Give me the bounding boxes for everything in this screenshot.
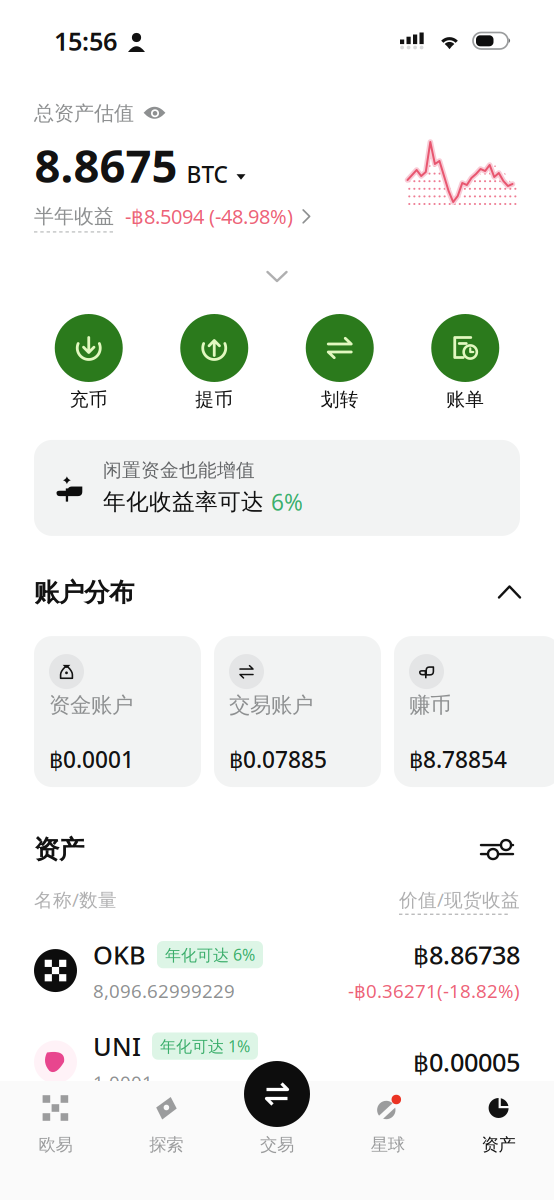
button[interactable]: 欧易 [0,1081,111,1200]
staticText: 欧易 [38,1134,72,1155]
staticText: 探索 [149,1134,183,1155]
staticText: 年化可达 6% [165,944,255,965]
staticText: -฿0.36271(-18.82%) [348,978,520,1003]
staticText: 年化可达 1% [160,1035,250,1057]
staticText: 1.0001 [93,1070,153,1095]
button[interactable]: 赚币 [394,636,554,787]
button[interactable]: 星球 [332,1081,443,1200]
button[interactable]: 划转 [277,314,402,411]
button[interactable]: UNI [0,1029,554,1095]
staticText: 提币 [195,388,233,411]
button[interactable]: 展开 [0,261,554,293]
staticText: 资金账户 [49,692,133,718]
staticText: -฿8.5094 (-48.98%) [125,203,293,230]
staticText: ฿0.00005 [413,1045,520,1079]
staticText: ฿0.0001 [49,744,134,774]
staticText: 交易 [260,1134,294,1155]
staticText: 账户分布 [34,577,134,608]
button[interactable]: OKB [0,938,554,1003]
staticText: 8.8675 [34,135,177,195]
button[interactable]: 筛选 [474,832,520,867]
staticText: 资产 [34,834,84,865]
staticText: 总资产估值 [34,101,134,126]
staticText: 充币 [70,388,108,411]
button[interactable]: 账单 [402,314,528,411]
button[interactable]: 总资产估值 [34,101,167,126]
button[interactable]: 探索 [111,1081,222,1200]
staticText: ฿8.86738 [413,938,520,971]
staticText: 价值/现货收益 [399,887,520,912]
staticText: 闲置资金也能增值 [103,459,255,482]
button[interactable]: 资金账户 [34,636,201,787]
button[interactable]: 交易 [222,1081,332,1200]
staticText: 半年收益 [34,204,114,229]
staticText: ฿0.07885 [229,744,327,774]
button[interactable]: 8.8675 [34,135,244,195]
staticText: UNI [93,1029,141,1063]
button[interactable]: 提币 [151,314,277,411]
staticText: 年化收益率可达 [103,488,264,516]
button[interactable]: 账户分布 [0,577,554,608]
staticText: 8,096.62999229 [93,978,235,1003]
staticText: OKB [93,938,146,971]
button[interactable]: 闲置资金也能增值 [0,440,554,536]
button[interactable]: 充币 [26,314,151,411]
staticText: 6% [271,487,303,517]
staticText: BTC [186,159,227,189]
staticText: 赚币 [409,692,451,718]
button[interactable]: 半年收益 [34,203,311,230]
staticText: 15:56 [54,24,117,58]
staticText: 账单 [446,388,484,411]
button[interactable]: 交易 [244,1061,310,1127]
staticText: 交易账户 [229,692,313,718]
staticText: 星球 [371,1134,405,1155]
button[interactable]: 资产 [443,1081,554,1200]
staticText: ฿8.78854 [409,744,507,774]
staticText: 资产 [482,1134,516,1155]
staticText: 划转 [321,388,359,411]
staticText: 名称/数量 [34,887,117,912]
button[interactable]: 交易账户 [214,636,381,787]
